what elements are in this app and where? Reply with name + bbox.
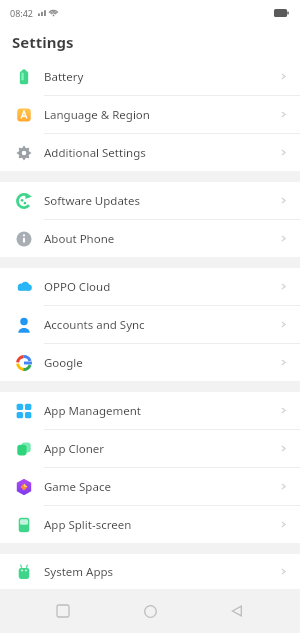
staticText: Battery — [44, 69, 84, 85]
staticText: App Management — [44, 403, 141, 419]
staticText: About Phone — [44, 231, 115, 247]
button[interactable]: About Phone — [0, 220, 300, 257]
button[interactable]: App Split-screen — [0, 506, 300, 543]
staticText: Software Updates — [44, 193, 141, 209]
button[interactable]: Game Space — [0, 468, 300, 505]
button[interactable]: System Apps — [0, 554, 300, 589]
button[interactable]: Additional Settings — [0, 134, 300, 171]
button[interactable]: Recent apps — [46, 594, 80, 628]
staticText: 08:42 — [10, 7, 34, 19]
staticText: Game Space — [44, 479, 111, 495]
button[interactable]: Google — [0, 344, 300, 381]
button[interactable]: Software Updates — [0, 182, 300, 219]
staticText: OPPO Cloud — [44, 279, 111, 295]
staticText: System Apps — [44, 564, 114, 580]
staticText: Google — [44, 355, 83, 371]
button[interactable]: App Management — [0, 392, 300, 429]
staticText: Settings — [12, 32, 74, 52]
staticText: App Split-screen — [44, 517, 132, 533]
button[interactable]: Home — [133, 594, 167, 628]
staticText: App Cloner — [44, 441, 105, 457]
button[interactable]: OPPO Cloud — [0, 268, 300, 305]
button[interactable]: App Cloner — [0, 430, 300, 467]
staticText: Language & Region — [44, 107, 150, 123]
button[interactable]: Accounts and Sync — [0, 306, 300, 343]
button[interactable]: Battery — [0, 58, 300, 95]
button[interactable]: Language & Region — [0, 96, 300, 133]
staticText: Additional Settings — [44, 145, 146, 161]
button[interactable]: Back — [220, 594, 254, 628]
staticText: Accounts and Sync — [44, 317, 145, 333]
